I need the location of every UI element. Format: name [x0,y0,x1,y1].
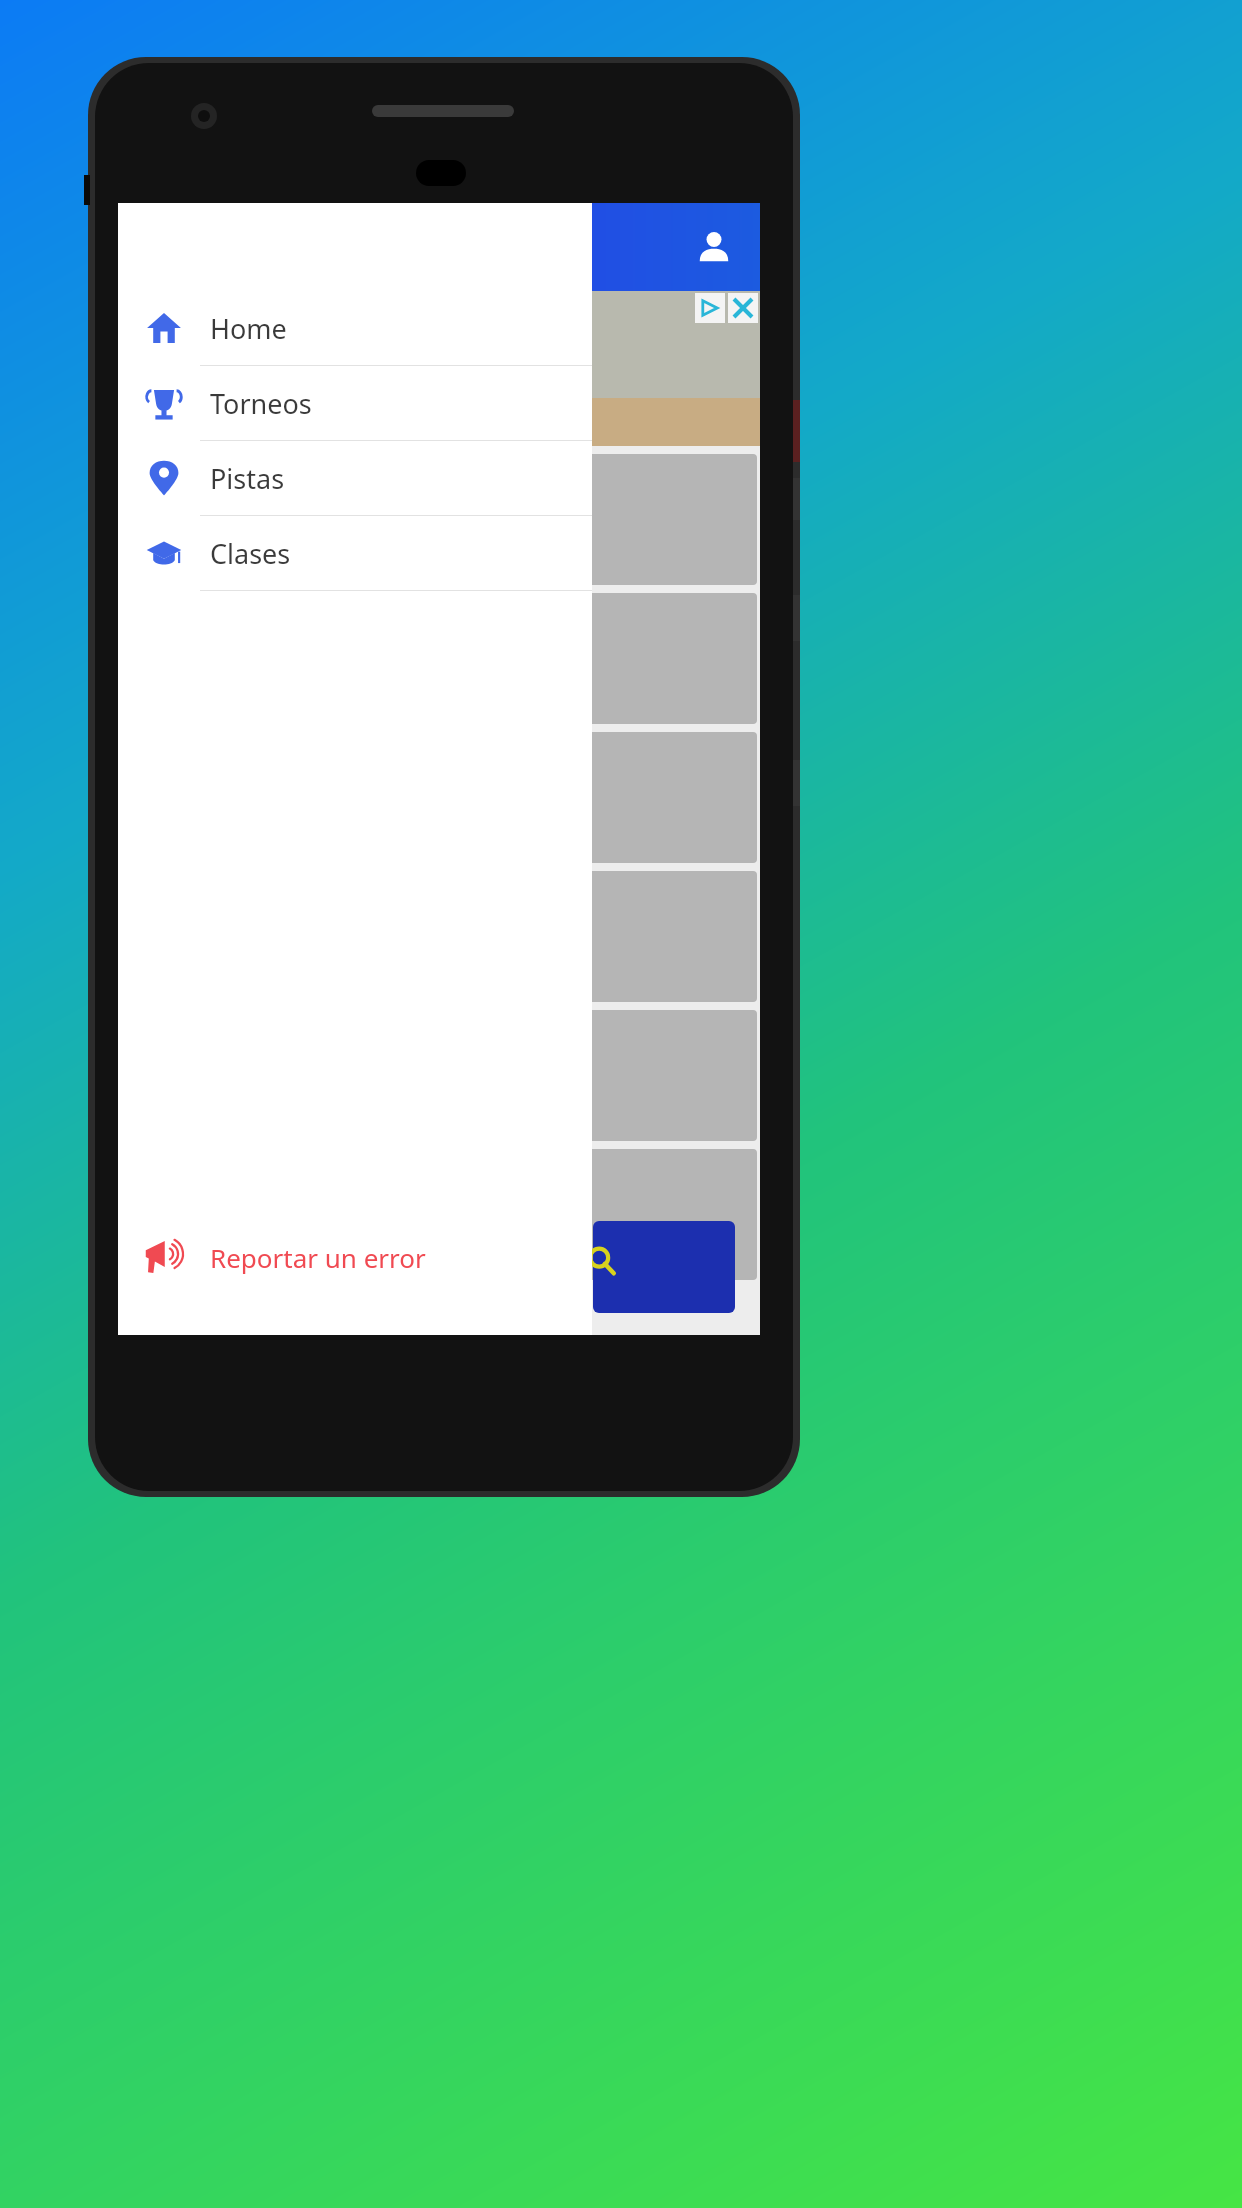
button[interactable]: Perfil [686,219,742,275]
button[interactable]: Reportar un error [118,1209,592,1305]
button[interactable]: Buscar [593,1221,735,1313]
button[interactable]: 15€ [121,732,757,863]
staticText: 15€ [502,502,549,539]
button[interactable]: 12€ [121,1149,757,1280]
staticText: Pistas [210,460,285,497]
button[interactable]: 15€ [121,454,757,585]
staticText: Torneos [210,385,312,422]
staticText: Clases [210,535,291,572]
staticText: ondiciones [122,411,214,436]
staticText: OFERTAS [155,350,242,377]
button[interactable]: Home [118,291,592,366]
button[interactable]: Clases [118,516,592,591]
button[interactable]: Close ad [728,293,758,323]
button[interactable]: Torneos [118,366,592,441]
button[interactable]: 25€ [121,1010,757,1141]
button[interactable]: Ad choices [695,293,725,323]
staticText: Home [210,310,287,347]
button[interactable]: 10€ [121,593,757,724]
staticText: Reportar un error [210,1240,426,1275]
button[interactable]: Pistas [118,441,592,516]
button[interactable]: 10€ [121,871,757,1002]
